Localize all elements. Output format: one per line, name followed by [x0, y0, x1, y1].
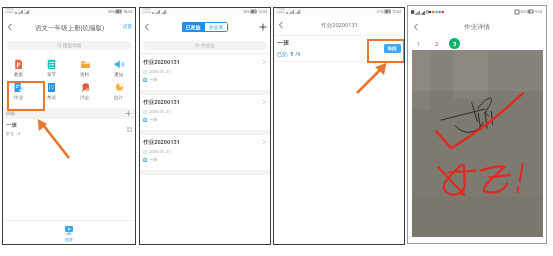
button[interactable]: 设置: [123, 24, 133, 30]
button[interactable]: 统计: [102, 82, 136, 101]
staticText: 一班: [149, 157, 158, 162]
button[interactable]: 搜索班级: [7, 41, 131, 50]
button[interactable]: 作业20200131: [139, 135, 271, 170]
button[interactable]: 3: [449, 38, 460, 49]
staticText: 作业20200131: [143, 98, 180, 106]
button[interactable]: 一班: [6, 119, 132, 139]
staticText: 批阅: [388, 46, 397, 51]
button[interactable]: Back: [5, 22, 15, 32]
staticText: 3: [453, 40, 457, 48]
staticText: 作业名: [201, 43, 215, 49]
staticText: 资料: [80, 72, 90, 78]
staticText: 作业: [14, 95, 24, 101]
button[interactable]: 作业: [2, 82, 35, 101]
staticText: 一班: [149, 77, 158, 82]
staticText: 中国移动 中国移动: [276, 8, 285, 14]
staticText: 已交:: [277, 51, 290, 58]
staticText: 作业20200131: [143, 138, 180, 146]
button[interactable]: 讨论: [68, 82, 102, 101]
other: Back: [411, 22, 421, 32]
staticText: 投屏: [65, 237, 73, 242]
staticText: 一班: [6, 122, 17, 129]
button[interactable]: Back: [142, 22, 152, 32]
staticText: 15:42: [392, 9, 402, 14]
staticText: 班级: [6, 111, 16, 117]
button[interactable]: 批阅: [384, 44, 401, 53]
staticText: 1: [417, 40, 421, 48]
button[interactable]: 投屏: [2, 221, 136, 245]
staticText: 94%: [243, 9, 250, 14]
button[interactable]: Back: [411, 22, 421, 32]
staticText: 中国移动 中国移动: [5, 8, 14, 14]
other: Back: [276, 20, 286, 30]
staticText: 36%: [520, 9, 527, 14]
staticText: 已发放: [186, 24, 201, 30]
button[interactable]: 章节: [35, 59, 68, 78]
button[interactable]: 2: [431, 38, 442, 49]
other: Back: [142, 22, 152, 32]
staticText: 学生：4: [6, 131, 21, 136]
staticText: 2020-01-31: [149, 69, 171, 75]
staticText: 一班: [277, 39, 289, 47]
staticText: 59%: [108, 9, 115, 14]
staticText: 51%: [377, 9, 384, 14]
button[interactable]: 考试: [35, 82, 68, 101]
staticText: /4: [294, 51, 301, 58]
staticText: 2: [435, 40, 439, 48]
button[interactable]: 已发放: [182, 22, 205, 32]
staticText: 章节: [47, 72, 57, 78]
button[interactable]: Add: [258, 22, 268, 32]
staticText: 2020-01-31: [149, 149, 171, 155]
staticText: 中国移动 中国移动: [142, 8, 151, 14]
staticText: 考试: [47, 95, 57, 101]
button[interactable]: 作业名: [143, 41, 267, 50]
staticText: 通知: [114, 72, 124, 78]
staticText: 作业库: [209, 24, 224, 30]
staticText: 作业详情: [464, 23, 490, 31]
other: Back: [5, 22, 15, 32]
button[interactable]: 作业库: [205, 22, 228, 32]
button[interactable]: 资料: [68, 59, 102, 78]
button[interactable]: 教案: [2, 59, 35, 78]
button[interactable]: Back: [276, 20, 286, 30]
staticText: 语文一年级上册(统编版): [35, 23, 104, 32]
button[interactable]: Add class: [125, 110, 132, 117]
staticText: 一班: [149, 117, 158, 122]
staticText: 教案: [14, 72, 24, 78]
staticText: 9:34: [535, 9, 543, 14]
button[interactable]: 作业20200131: [139, 55, 271, 90]
staticText: 1: [290, 50, 294, 58]
staticText: 讨论: [80, 95, 90, 101]
staticText: 2020-01-31: [149, 109, 171, 115]
staticText: 设置: [123, 24, 133, 30]
staticText: 作业20200131: [143, 58, 180, 66]
button[interactable]: 通知: [102, 59, 136, 78]
staticText: 搜索班级: [63, 43, 82, 49]
staticText: 统计: [114, 95, 124, 101]
staticText: 12:02: [258, 9, 268, 14]
button[interactable]: 作业20200131: [139, 95, 271, 130]
button[interactable]: 1: [413, 38, 424, 49]
staticText: 18:24: [123, 9, 133, 14]
staticText: 作业20200131: [321, 21, 358, 29]
